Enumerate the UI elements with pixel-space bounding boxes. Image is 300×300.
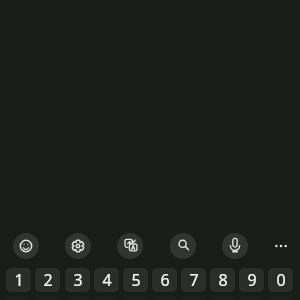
button[interactable]: Voice input [222,233,248,259]
button[interactable]: 6 [152,268,177,292]
button[interactable]: 5 [123,268,148,292]
button[interactable]: Settings [65,233,91,259]
staticText: 6 [160,269,170,291]
button[interactable]: Emoji [13,233,39,259]
staticText: 1 [14,269,24,291]
button[interactable]: 8 [210,268,235,292]
button[interactable]: 4 [94,268,119,292]
button[interactable]: More options [268,233,294,259]
staticText: 3 [73,269,83,291]
staticText: 8 [218,269,228,291]
staticText: 7 [189,269,199,291]
button[interactable]: Search [170,233,196,259]
staticText: 4 [102,269,112,291]
button[interactable]: 9 [239,268,264,292]
button[interactable]: 1 [6,268,31,292]
button[interactable]: 2 [35,268,60,292]
staticText: 9 [247,269,257,291]
button[interactable]: 0 [268,268,293,292]
button[interactable]: 3 [65,268,90,292]
button[interactable]: Switch keyboard language [117,233,143,259]
staticText: 0 [276,269,286,291]
staticText: 2 [43,269,53,291]
button[interactable]: 7 [181,268,206,292]
staticText: 5 [131,269,141,291]
